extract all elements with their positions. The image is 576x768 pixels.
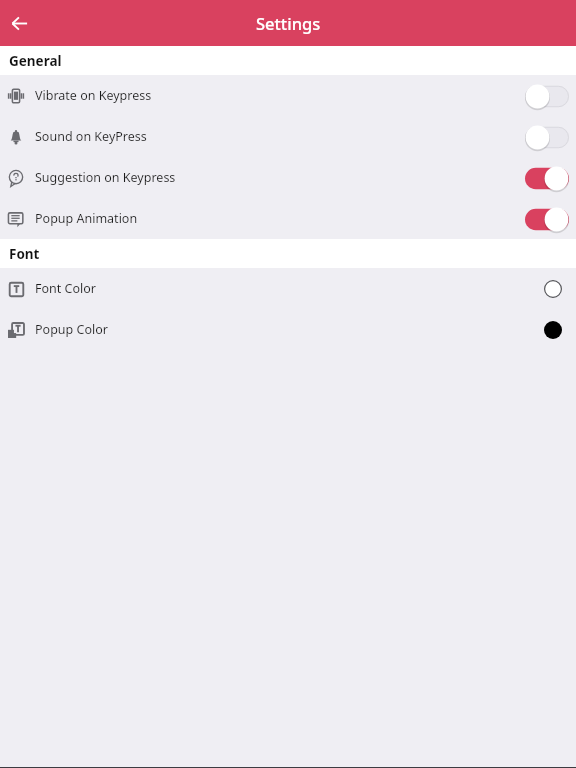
staticText: Sound on KeyPress [35, 128, 147, 145]
staticText: Settings [256, 12, 321, 34]
button[interactable]: Popup Color [0, 309, 576, 350]
button[interactable]: Off [523, 81, 570, 111]
staticText: Font [9, 245, 40, 263]
button[interactable]: Sound on KeyPress [0, 116, 576, 157]
staticText: Popup Animation [35, 210, 138, 227]
staticText: Vibrate on Keypress [35, 87, 152, 104]
button[interactable]: Popup Animation [0, 198, 576, 239]
button[interactable]: Vibrate on Keypress [0, 75, 576, 116]
staticText: Suggestion on Keypress [35, 169, 176, 186]
staticText: Popup Color [35, 321, 108, 338]
button[interactable]: Font Color [0, 268, 576, 309]
button[interactable]: On [523, 204, 570, 234]
button[interactable]: Pick color [538, 314, 568, 346]
button[interactable]: Off [523, 122, 570, 152]
button[interactable]: Suggestion on Keypress [0, 157, 576, 198]
button[interactable]: Back [2, 6, 36, 40]
button[interactable]: On [523, 163, 570, 193]
button[interactable]: Pick color [538, 273, 568, 305]
staticText: Font Color [35, 280, 96, 297]
staticText: General [9, 52, 62, 70]
